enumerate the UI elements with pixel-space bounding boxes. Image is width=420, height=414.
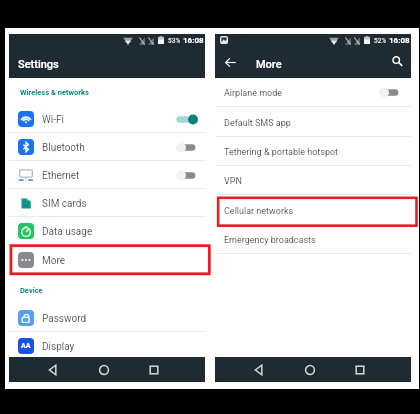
staticText: Bluetooth: [42, 142, 85, 154]
button[interactable]: Data usage: [9, 217, 205, 245]
staticText: 52%: [374, 37, 387, 45]
staticText: Password: [42, 313, 87, 325]
button[interactable]: Password: [9, 304, 205, 332]
staticText: VPN: [224, 176, 242, 187]
button[interactable]: Search: [391, 55, 404, 68]
button[interactable]: Wi-Fi: [9, 105, 205, 133]
button[interactable]: More: [9, 246, 205, 274]
button[interactable]: AA: [9, 332, 205, 360]
staticText: Emergency broadcasts: [224, 235, 316, 246]
button[interactable]: Default SMS app: [215, 108, 411, 137]
staticText: Settings: [18, 58, 59, 71]
staticText: 53%: [168, 37, 181, 45]
button[interactable]: Cellular networks: [215, 196, 411, 225]
staticText: Tethering & portable hotspot: [224, 147, 339, 158]
staticText: Device: [20, 286, 43, 295]
staticText: Data usage: [42, 226, 93, 238]
staticText: Ethernet: [42, 170, 80, 182]
button[interactable]: Bluetooth: [9, 133, 205, 161]
staticText: Default SMS app: [224, 118, 291, 129]
staticText: Wireless & networks: [20, 88, 89, 97]
button[interactable]: Tethering & portable hotspot: [215, 137, 411, 166]
button[interactable]: Back: [249, 360, 269, 380]
button[interactable]: Recents: [350, 360, 370, 380]
staticText: Airplane mode: [224, 88, 283, 99]
staticText: SIM cards: [42, 198, 87, 210]
button[interactable]: Emergency broadcasts: [215, 225, 411, 254]
staticText: Wi-Fi: [42, 114, 65, 126]
staticText: Cellular networks: [224, 206, 294, 217]
button[interactable]: Ethernet: [9, 161, 205, 189]
button[interactable]: Home: [300, 360, 320, 380]
button[interactable]: Home: [94, 360, 114, 380]
button[interactable]: Back: [43, 360, 63, 380]
staticText: AA: [21, 342, 31, 350]
button[interactable]: Back: [224, 56, 237, 69]
button[interactable]: Airplane mode: [215, 78, 411, 107]
button[interactable]: Recents: [144, 360, 164, 380]
button[interactable]: VPN: [215, 166, 411, 195]
staticText: 16:08: [389, 36, 410, 45]
staticText: 16:08: [183, 36, 204, 45]
staticText: More: [256, 58, 282, 71]
staticText: More: [42, 255, 66, 267]
button[interactable]: SIM cards: [9, 189, 205, 217]
staticText: Display: [42, 341, 75, 353]
